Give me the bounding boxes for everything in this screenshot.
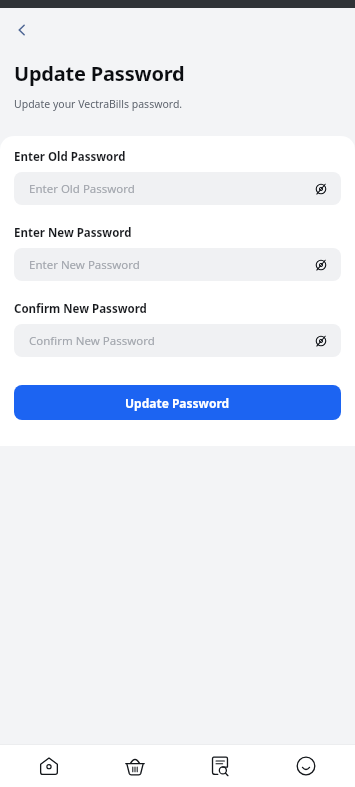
staticText: Confirm New Password — [29, 333, 155, 349]
staticText: Enter New Password — [14, 225, 132, 241]
button[interactable]: Back — [6, 14, 38, 46]
staticText: Enter Old Password — [14, 149, 126, 165]
button[interactable]: Home — [13, 745, 85, 787]
staticText: Confirm New Password — [14, 301, 147, 317]
button[interactable]: Confirm New Password — [14, 324, 341, 357]
button[interactable]: Enter New Password — [14, 248, 341, 281]
staticText: Update Password — [125, 395, 230, 411]
button[interactable]: Show password — [308, 176, 334, 202]
staticText: Enter Old Password — [29, 181, 135, 197]
staticText: Update Password — [14, 60, 185, 87]
button[interactable]: Profile — [270, 745, 342, 787]
button[interactable]: Update Password — [14, 385, 341, 420]
button[interactable]: Show password — [308, 252, 334, 278]
staticText: Update your VectraBills password. — [14, 97, 183, 111]
button[interactable]: Basket — [99, 745, 171, 787]
button[interactable]: Show password — [308, 328, 334, 354]
staticText: Enter New Password — [29, 257, 140, 273]
button[interactable]: Enter Old Password — [14, 172, 341, 205]
button[interactable]: Search bills — [184, 745, 256, 787]
